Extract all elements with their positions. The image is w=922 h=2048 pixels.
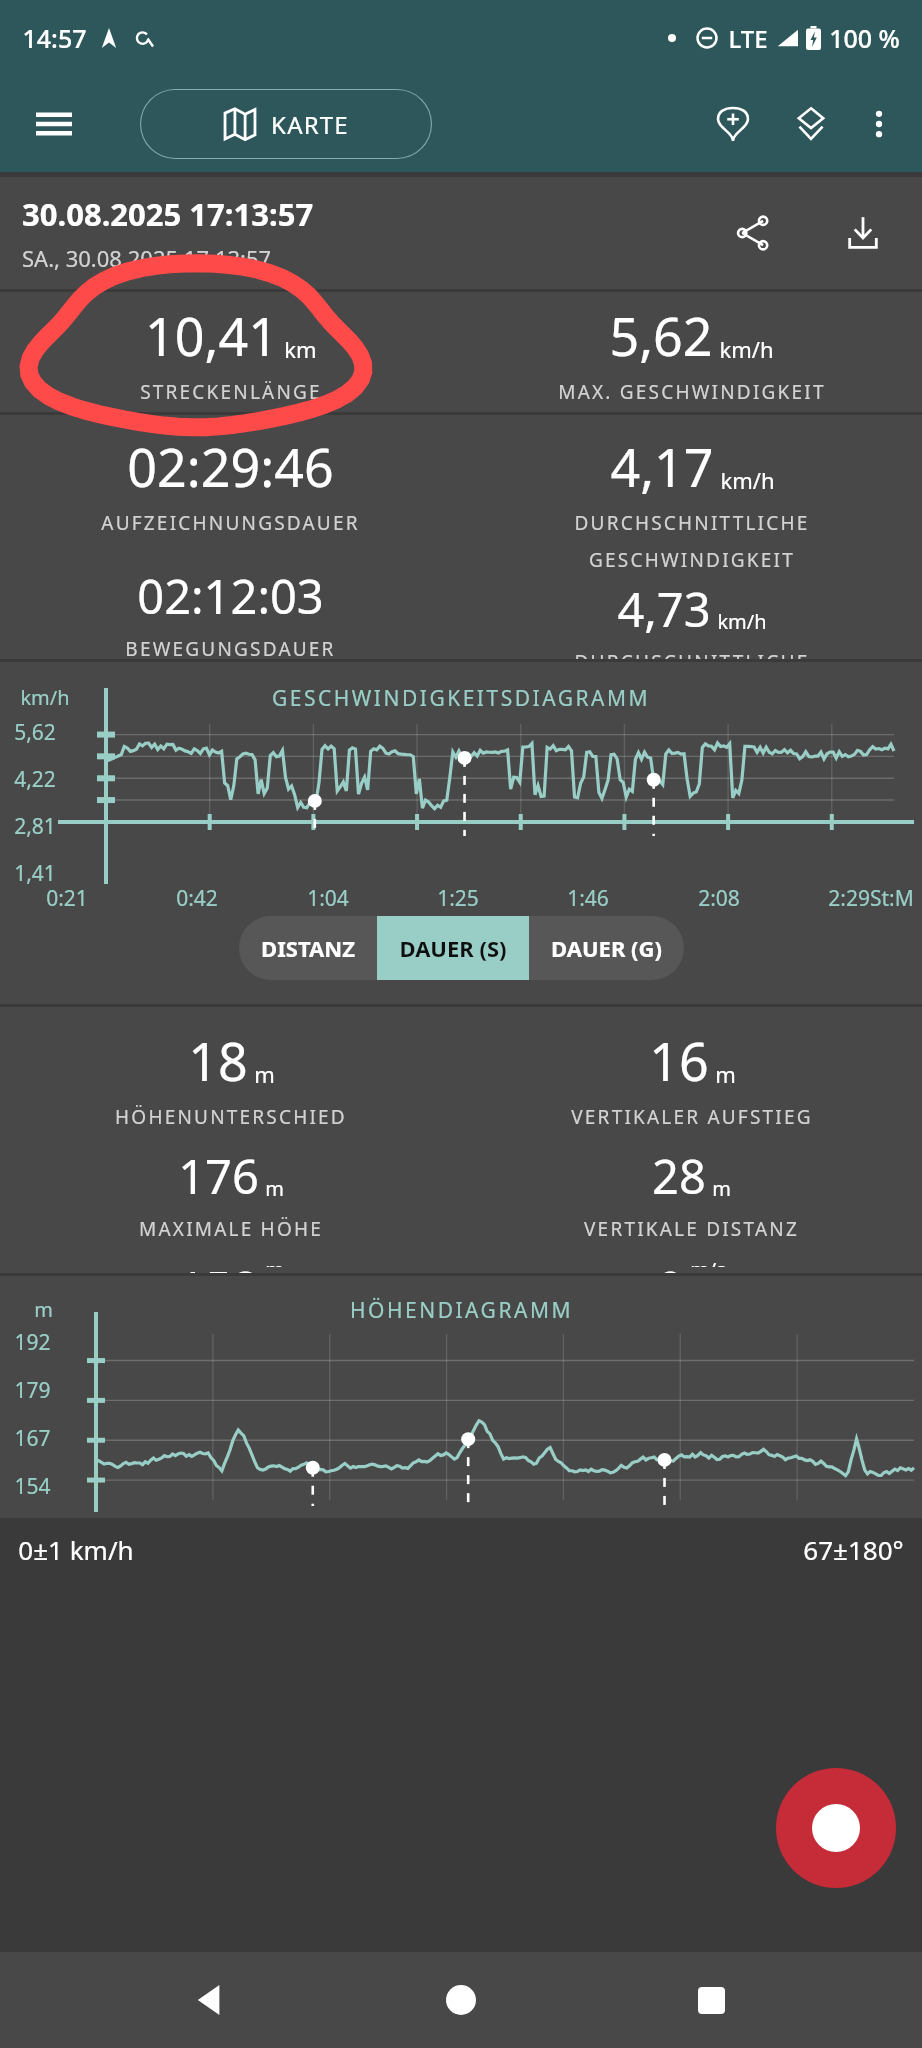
staticText: km/h	[719, 334, 774, 364]
staticText: 154	[14, 1472, 51, 1501]
staticText: 16	[649, 1025, 709, 1096]
staticText: AUFZEICHNUNGSDAUER	[101, 510, 360, 536]
button[interactable]: DAUER (S)	[377, 916, 529, 980]
staticText: km/h	[720, 465, 775, 495]
staticText: 0	[657, 1256, 684, 1273]
staticText: 4,17	[610, 431, 714, 502]
staticText: DURCHSCHNITTLICHE	[574, 649, 810, 659]
button[interactable]: 18	[115, 1025, 347, 1130]
staticText: m	[715, 1059, 736, 1089]
staticText: m	[34, 1296, 53, 1323]
staticText: 2:29St:M	[828, 884, 914, 913]
staticText: SA., 30.08.2025 17:13:57	[22, 243, 272, 273]
staticText: 100 %	[829, 21, 900, 55]
staticText: 28	[652, 1144, 706, 1208]
staticText: 158	[178, 1256, 259, 1273]
button[interactable]: Recent apps	[672, 1961, 750, 2039]
staticText: 0:42	[176, 884, 218, 913]
button[interactable]: Back	[172, 1961, 250, 2039]
staticText: VERTIKALE DISTANZ	[584, 1216, 799, 1242]
staticText: m	[712, 1175, 731, 1202]
button[interactable]: 02:12:03	[125, 564, 336, 659]
staticText: 1:25	[437, 884, 479, 913]
staticText: 67±180°	[803, 1532, 904, 1567]
staticText: DISTANZ	[261, 933, 355, 963]
button[interactable]: 28	[584, 1144, 799, 1242]
button[interactable]: Home	[422, 1961, 500, 2039]
button[interactable]: 0	[527, 1256, 856, 1273]
staticText: STRECKENLÄNGE	[140, 379, 322, 405]
staticText: 4,73	[617, 577, 711, 641]
button[interactable]: Menu	[26, 96, 82, 152]
staticText: m	[265, 1175, 284, 1202]
staticText: 176	[178, 1144, 259, 1208]
staticText: HÖHENUNTERSCHIED	[115, 1104, 347, 1130]
staticText: km	[284, 334, 317, 364]
staticText: GESCHWINDIGKEITSDIAGRAMM	[272, 684, 650, 713]
staticText: KARTE	[271, 108, 349, 141]
staticText: 30.08.2025 17:13:57	[22, 193, 314, 235]
staticText: 5,62	[14, 718, 56, 747]
button[interactable]: 16	[571, 1025, 813, 1130]
button[interactable]: 4,17	[574, 431, 810, 573]
staticText: LTE	[728, 22, 768, 55]
button[interactable]: DAUER (G)	[529, 916, 684, 980]
staticText: 18	[188, 1025, 248, 1096]
staticText: 5,62	[609, 300, 713, 371]
button[interactable]: 10,41	[0, 300, 461, 405]
staticText: 167	[14, 1424, 51, 1453]
staticText: 2:08	[698, 884, 740, 913]
staticText: km/h	[20, 684, 70, 711]
staticText: DURCHSCHNITTLICHE	[574, 510, 810, 536]
button[interactable]: Add waypoint	[704, 95, 762, 153]
staticText: BEWEGUNGSDAUER	[125, 636, 336, 659]
staticText: 1:04	[307, 884, 349, 913]
staticText: m	[254, 1059, 275, 1089]
button[interactable]: 5,62	[461, 300, 922, 405]
staticText: m	[265, 1256, 284, 1267]
staticText: 192	[14, 1328, 51, 1357]
button[interactable]: 176	[139, 1144, 323, 1242]
staticText: 14:57	[22, 21, 87, 55]
staticText: 179	[14, 1376, 51, 1405]
button[interactable]: Layers	[782, 95, 840, 153]
staticText: 0:21	[46, 884, 88, 913]
staticText: 1:46	[567, 884, 609, 913]
button[interactable]: Record	[776, 1768, 896, 1888]
button[interactable]: Share	[720, 200, 786, 266]
staticText: 2,81	[14, 812, 56, 841]
staticText: DAUER (G)	[551, 933, 662, 963]
staticText: HÖHENDIAGRAMM	[350, 1296, 573, 1325]
staticText: 1,41	[14, 859, 56, 888]
button[interactable]: 158	[140, 1256, 322, 1273]
button[interactable]: More options	[850, 95, 908, 153]
button[interactable]: DISTANZ	[239, 916, 377, 980]
staticText: VERTIKALER AUFSTIEG	[571, 1104, 813, 1130]
staticText: 02:12:03	[137, 564, 324, 628]
staticText: 4,22	[14, 765, 56, 794]
staticText: 10,41	[145, 300, 278, 371]
staticText: GESCHWINDIGKEIT	[589, 547, 795, 573]
staticText: m/s	[690, 1256, 726, 1267]
staticText: MAX. GESCHWINDIGKEIT	[558, 379, 826, 405]
staticText: DAUER (S)	[399, 933, 507, 963]
staticText: 02:29:46	[127, 431, 334, 502]
staticText: km/h	[717, 608, 767, 635]
button[interactable]: KARTE	[140, 89, 432, 159]
staticText: 0±1 km/h	[18, 1532, 134, 1567]
staticText: MAXIMALE HÖHE	[139, 1216, 323, 1242]
button[interactable]: Download	[830, 200, 896, 266]
button[interactable]: 4,73	[520, 577, 864, 659]
button[interactable]: 02:29:46	[101, 431, 360, 536]
